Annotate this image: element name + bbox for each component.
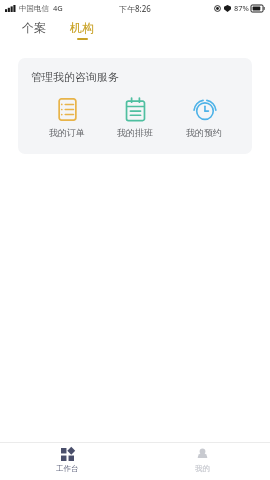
staticText: 中国电信 [19, 4, 49, 13]
other: 我的预约 [193, 98, 216, 121]
button[interactable]: 个案 [18, 18, 50, 42]
staticText: 工作台 [56, 464, 79, 473]
button[interactable]: 我的预约 [178, 96, 230, 140]
staticText: 管理我的咨询服务 [31, 70, 119, 84]
staticText: 我的订单 [49, 127, 85, 138]
other: 我的排班 [124, 98, 147, 121]
staticText: 我的预约 [186, 127, 222, 138]
staticText: 我的 [195, 464, 210, 473]
staticText: 个案 [22, 20, 46, 35]
button[interactable]: 机构 [66, 18, 98, 42]
button[interactable]: 我的 [135, 443, 270, 480]
staticText: 4G [53, 3, 63, 13]
staticText: 我的排班 [117, 127, 153, 138]
staticText: 机构 [70, 20, 94, 35]
staticText: 87% [234, 3, 249, 13]
button[interactable]: 我的排班 [109, 96, 161, 140]
other: 我的订单 [56, 98, 79, 121]
staticText: 下午8:26 [119, 3, 151, 14]
button[interactable]: 工作台 [0, 443, 135, 480]
button[interactable]: 我的订单 [41, 96, 93, 140]
